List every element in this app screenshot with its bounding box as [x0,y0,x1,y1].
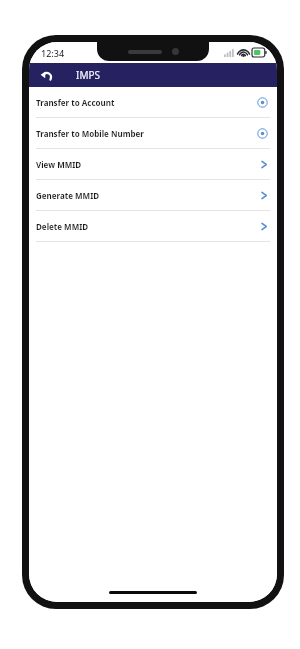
staticText: Generate MMID [36,190,100,201]
button[interactable]: Generate MMID [29,180,277,210]
button[interactable]: Back [35,64,57,86]
staticText: 12:34 [41,47,65,59]
staticText: View MMID [36,159,82,170]
staticText: Delete MMID [36,221,89,232]
button[interactable]: Transfer to Mobile Number [29,118,277,148]
staticText: Transfer to Account [36,97,115,108]
button[interactable]: Transfer to Account [29,87,277,117]
button[interactable]: Delete MMID [29,211,277,241]
staticText: IMPS [76,68,100,82]
staticText: Transfer to Mobile Number [36,128,144,139]
button[interactable]: View MMID [29,149,277,179]
